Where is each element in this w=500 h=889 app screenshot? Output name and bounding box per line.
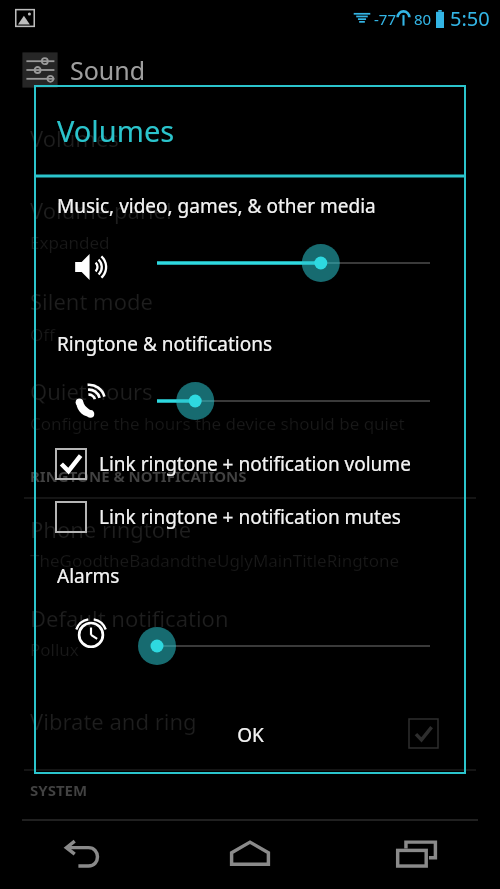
staticText: Link ringtone + notification volume — [99, 451, 411, 477]
staticText: Volumes — [30, 123, 119, 153]
staticText: Quiet hours — [30, 376, 153, 406]
staticText: Configure the hours the device should be… — [30, 412, 405, 435]
staticText: SYSTEM — [30, 780, 88, 800]
staticText: Volumes — [57, 111, 175, 150]
button[interactable]: Link ringtone + notification volume — [55, 441, 455, 487]
staticText: Off — [30, 323, 55, 346]
staticText: Link ringtone + notification mutes — [99, 504, 401, 530]
button[interactable]: Recent apps — [333, 820, 500, 889]
staticText: 5:50 — [450, 5, 490, 32]
other: Screenshot — [14, 7, 36, 29]
staticText: Expanded — [30, 231, 110, 254]
staticText: Ringtone & notifications — [57, 331, 273, 357]
staticText: 80 — [414, 9, 432, 29]
button[interactable] — [35, 86, 465, 773]
button[interactable]: Link ringtone + notification mutes — [55, 494, 455, 540]
staticText: Phone ringtone — [30, 514, 192, 544]
other: Alarm volume — [73, 614, 109, 650]
staticText: RINGTONE & NOTIFICATIONS — [30, 466, 247, 486]
staticText: Sound — [70, 53, 146, 87]
other: Ringtone volume — [73, 384, 111, 422]
button[interactable]: OK — [205, 711, 295, 759]
other: Media volume — [73, 249, 109, 285]
button[interactable]: Home — [166, 820, 333, 889]
staticText: Default notification — [30, 603, 229, 633]
button[interactable] — [35, 86, 465, 773]
staticText: -77 — [374, 9, 396, 29]
staticText: Pollux — [30, 638, 79, 661]
staticText: OK — [237, 722, 264, 748]
button[interactable]: Back — [0, 820, 166, 889]
staticText: Alarms — [57, 563, 120, 589]
staticText: Vibrate and ring — [30, 706, 197, 736]
staticText: TheGoodtheBadandtheUglyMainTitleRingtone — [30, 549, 400, 572]
staticText: Music, video, games, & other media — [57, 193, 376, 219]
staticText: Volume panel — [30, 195, 172, 225]
button[interactable] — [35, 86, 465, 773]
staticText: Silent mode — [30, 286, 153, 316]
